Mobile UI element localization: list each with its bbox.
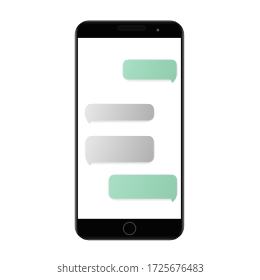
button[interactable]: Home — [123, 222, 137, 236]
button[interactable]: Message from Anna: Yes, 8 o'clock works — [86, 104, 154, 124]
button[interactable]: Message from me: Perfect, see you there — [109, 175, 177, 203]
button[interactable]: Message from Anna: I'll book the table n… — [86, 136, 154, 166]
button[interactable]: Message from me: Hey, are we still on fo… — [123, 60, 176, 83]
staticText: shutterstock.com · 1725676483 — [57, 261, 204, 275]
